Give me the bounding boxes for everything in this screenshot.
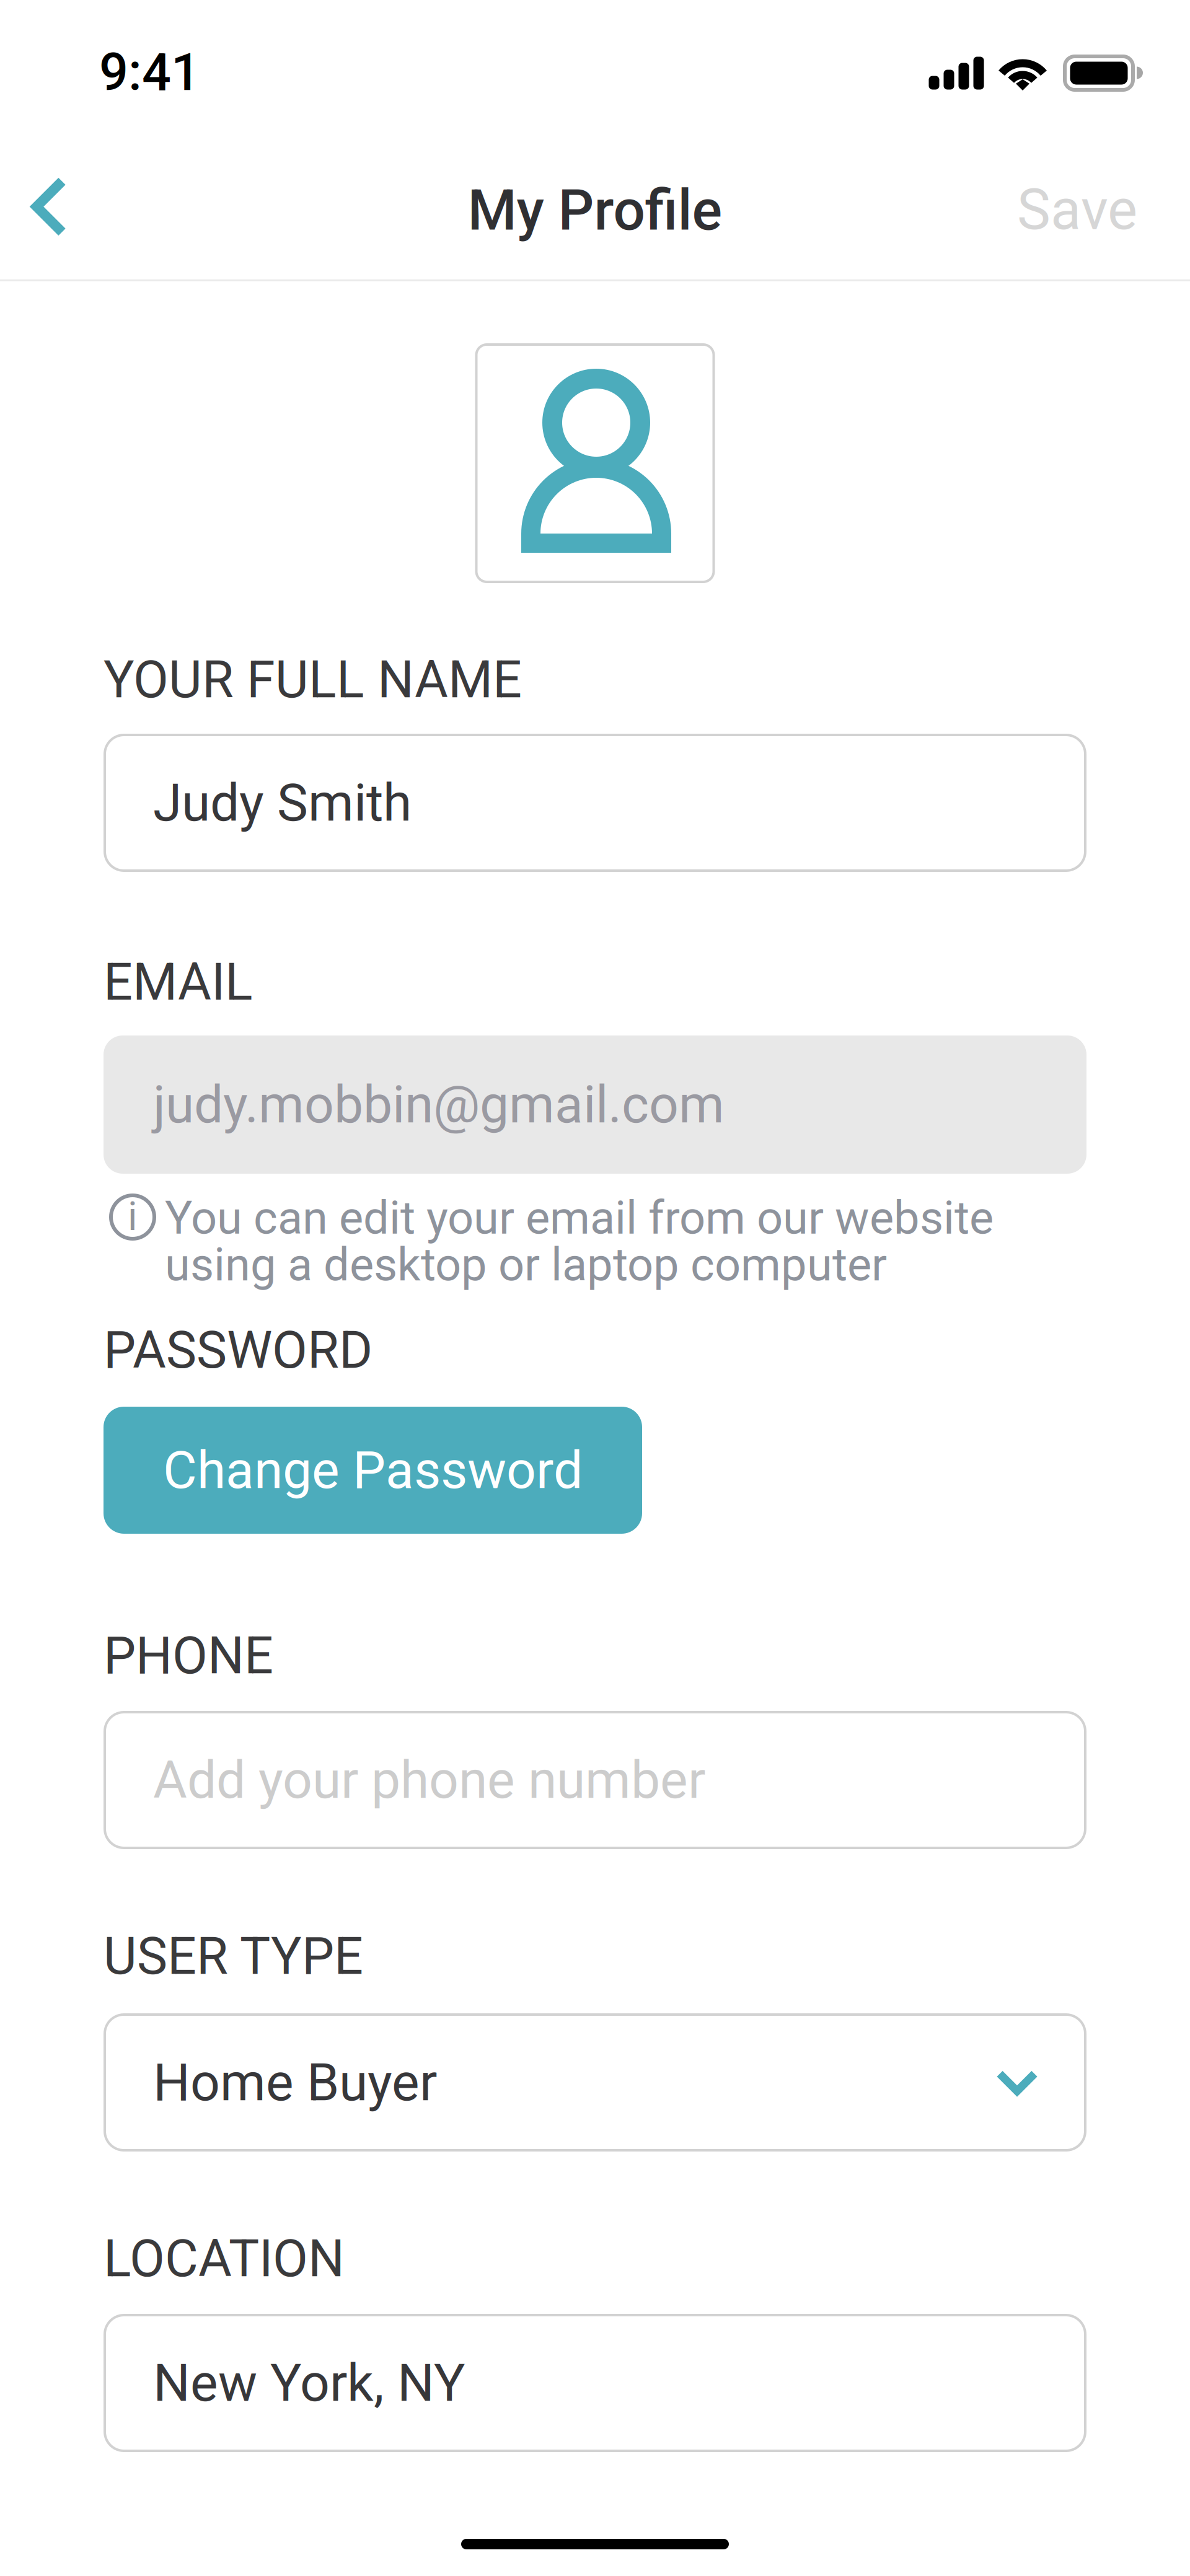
staticText: New York, NY <box>153 2352 465 2413</box>
staticText: EMAIL <box>104 952 253 1012</box>
staticText: LOCATION <box>104 2229 345 2289</box>
button[interactable]: Home Buyer <box>104 2013 1086 2152</box>
staticText: YOUR FULL NAME <box>104 650 522 710</box>
staticText: 9:41 <box>99 43 200 103</box>
button[interactable]: Back <box>0 153 105 261</box>
staticText: USER TYPE <box>104 1926 363 1986</box>
staticText: PHONE <box>104 1626 273 1686</box>
staticText: PASSWORD <box>104 1320 372 1380</box>
staticText: My Profile <box>468 177 722 243</box>
staticText: i <box>128 1193 138 1240</box>
staticText: Add your phone number <box>153 1750 705 1811</box>
staticText: Home Buyer <box>153 2052 437 2113</box>
staticText: Change Password <box>163 1440 583 1501</box>
staticText: using a desktop or laptop computer <box>165 1238 887 1292</box>
button[interactable]: Save <box>980 152 1190 268</box>
staticText: Judy Smith <box>153 772 412 833</box>
button[interactable]: Change Password <box>104 1407 642 1534</box>
button[interactable]: Profile photo <box>475 343 715 583</box>
staticText: Save <box>1017 177 1137 243</box>
staticText: You can edit your email from our website <box>165 1191 994 1245</box>
staticText: judy.mobbin@gmail.com <box>153 1074 725 1135</box>
